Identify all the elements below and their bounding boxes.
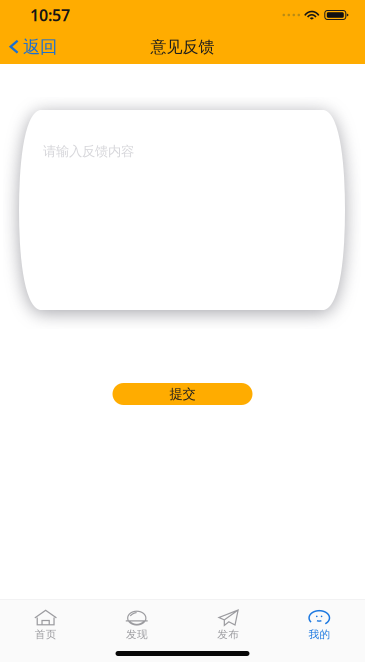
button[interactable]: 发现	[91, 599, 182, 647]
staticText: 请输入反馈内容	[43, 143, 134, 159]
staticText: 发现	[126, 628, 148, 641]
staticText: 10:57	[30, 4, 70, 26]
staticText: 我的	[308, 628, 330, 641]
button[interactable]: 首页	[0, 599, 91, 647]
button[interactable]: 返回	[0, 30, 69, 64]
staticText: 返回	[23, 36, 57, 58]
staticText: 提交	[169, 386, 195, 402]
staticText: 发布	[217, 628, 239, 641]
button[interactable]: 提交	[112, 383, 252, 405]
button[interactable]: 发布	[182, 599, 274, 647]
staticText: 首页	[35, 628, 57, 641]
staticText: 意见反馈	[150, 37, 214, 57]
button[interactable]: 我的	[274, 599, 365, 647]
